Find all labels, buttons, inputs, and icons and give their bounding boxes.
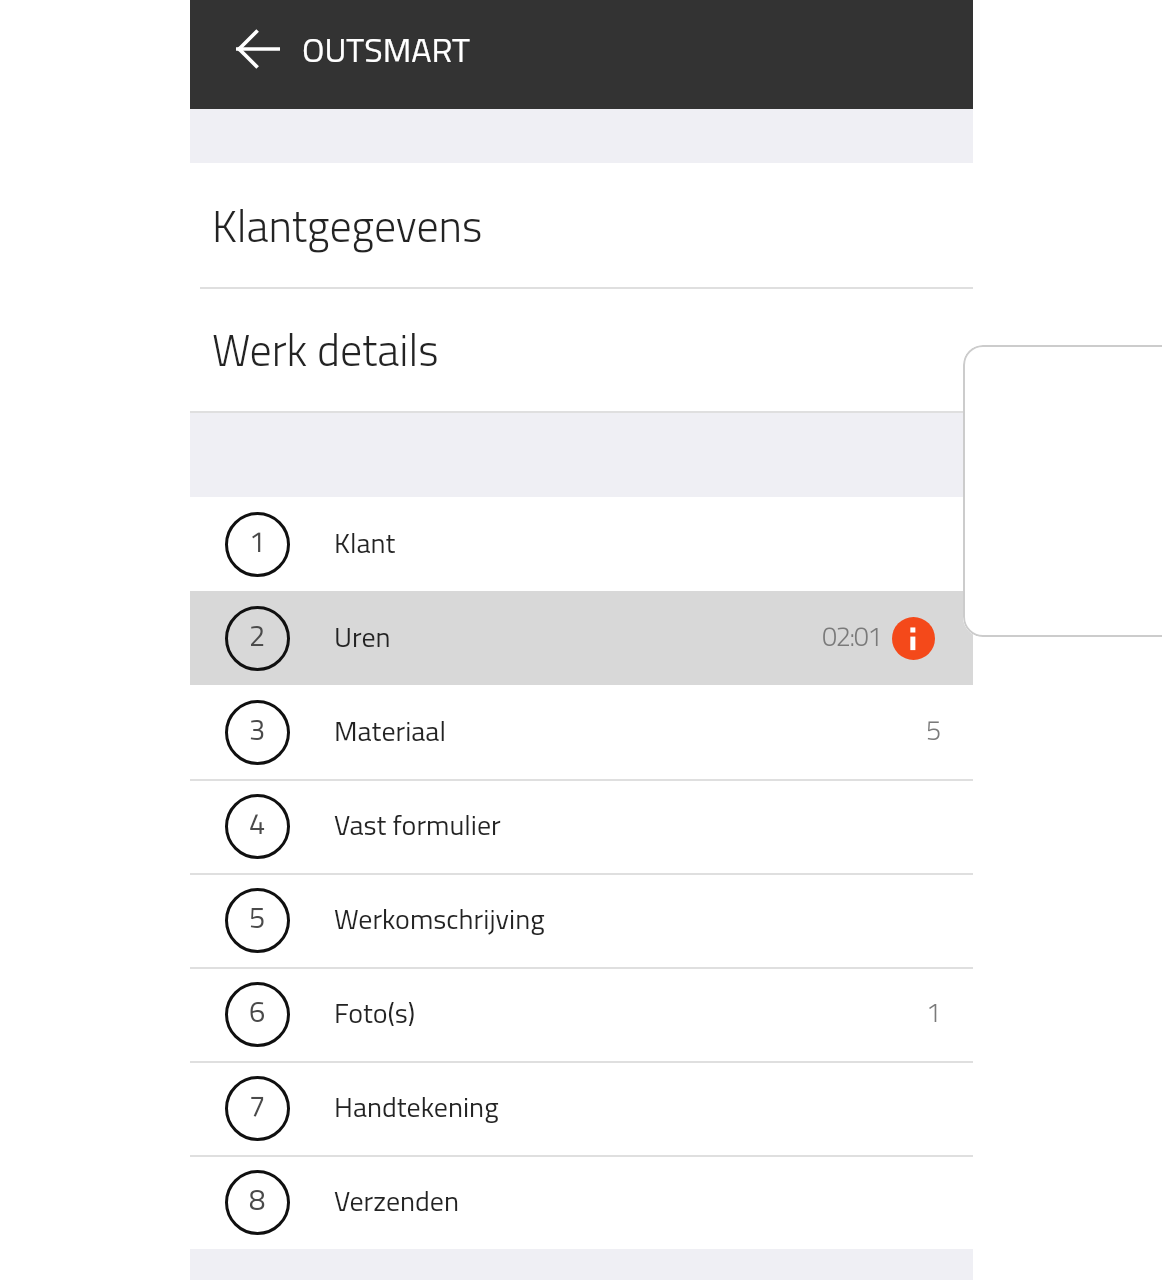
staticText: 8 xyxy=(249,1177,266,1221)
staticText: 1 xyxy=(249,519,266,563)
staticText: 3 xyxy=(249,707,266,751)
button[interactable]: Back xyxy=(226,17,290,81)
button[interactable]: 2 xyxy=(190,591,973,685)
staticText: 6 xyxy=(249,989,266,1033)
button[interactable]: 3 xyxy=(190,685,973,779)
button[interactable]: 6 xyxy=(190,967,973,1061)
staticText: 4 xyxy=(249,801,266,845)
staticText: Verzenden xyxy=(334,1179,460,1222)
button[interactable]: 1 xyxy=(190,497,973,591)
staticText: Vast formulier xyxy=(334,803,501,846)
button[interactable]: Klantgegevens xyxy=(190,163,973,287)
button[interactable]: 8 xyxy=(190,1155,973,1249)
staticText: 5 xyxy=(249,895,266,939)
button[interactable]: 4 xyxy=(190,779,973,873)
staticText: 1 xyxy=(926,991,940,1032)
staticText: Werk details xyxy=(212,316,439,383)
staticText: 2 xyxy=(249,613,266,657)
button[interactable]: 5 xyxy=(190,873,973,967)
staticText: Werkomschrijving xyxy=(334,897,545,940)
staticText: 7 xyxy=(249,1083,266,1127)
button[interactable]: Info xyxy=(892,617,935,660)
staticText: Handtekening xyxy=(334,1085,499,1128)
staticText: Klantgegevens xyxy=(212,192,483,259)
staticText: 02:01 xyxy=(822,615,882,656)
staticText: 5 xyxy=(926,709,940,750)
staticText: Uren xyxy=(334,615,391,658)
button[interactable]: Werk details xyxy=(190,287,973,411)
staticText: OUTSMART xyxy=(302,23,470,75)
button[interactable]: 7 xyxy=(190,1061,973,1155)
staticText: Klant xyxy=(334,521,396,564)
staticText: Materiaal xyxy=(334,709,446,752)
staticText: Foto(s) xyxy=(334,991,416,1034)
